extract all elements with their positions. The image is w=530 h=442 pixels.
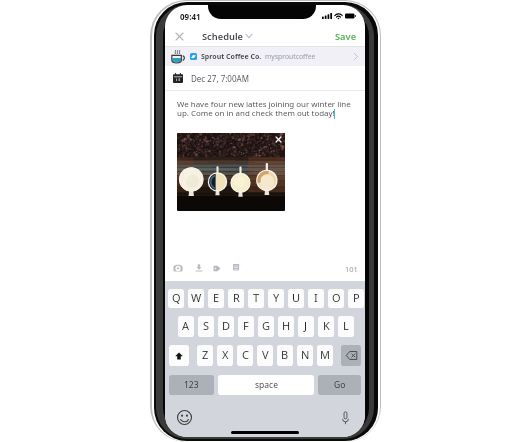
button[interactable]: X [217, 345, 233, 366]
button[interactable]: M [317, 345, 333, 366]
button[interactable]: Emoji [177, 410, 192, 425]
button[interactable]: Tag [211, 262, 223, 274]
staticText: C [242, 347, 249, 362]
button[interactable]: Dictate [337, 410, 353, 426]
staticText: A [182, 318, 190, 333]
button[interactable]: S [198, 316, 214, 337]
button[interactable]: E [208, 289, 224, 308]
staticText: O [332, 290, 341, 305]
staticText: K [323, 318, 330, 333]
staticText: Dec 27, 7:00AM [191, 73, 249, 84]
button[interactable]: Go [318, 375, 361, 395]
staticText: mysproutcoffee [265, 52, 316, 61]
staticText: I [314, 290, 318, 305]
button[interactable]: Save [335, 28, 357, 44]
staticText: E [213, 290, 220, 305]
staticText: S [203, 318, 210, 333]
staticText: V [262, 347, 269, 362]
staticText: 101 [345, 264, 358, 274]
button[interactable]: L [338, 316, 354, 337]
staticText: R [233, 290, 240, 305]
button[interactable]: D [218, 316, 234, 337]
staticText: Go [334, 379, 346, 391]
staticText: Sprout Coffee Co. [201, 52, 262, 62]
button[interactable]: Dec 27, 7:00AM [165, 66, 365, 90]
button[interactable]: R [228, 289, 244, 308]
button[interactable]: I [308, 289, 324, 308]
staticText: Y [273, 290, 280, 305]
button[interactable]: Y [268, 289, 284, 308]
button[interactable]: Z [197, 345, 213, 366]
button[interactable]: N [297, 345, 313, 366]
staticText: T [253, 290, 260, 305]
button[interactable]: K [318, 316, 334, 337]
staticText: Save [335, 30, 357, 43]
staticText: M [320, 347, 330, 362]
button[interactable]: B [277, 345, 293, 366]
staticText: H [282, 318, 291, 333]
button[interactable]: Backspace [341, 345, 361, 366]
staticText: W [191, 290, 202, 305]
staticText: Z [202, 347, 209, 362]
staticText: N [301, 347, 310, 362]
staticText: P [353, 290, 360, 305]
staticText: D [222, 318, 231, 333]
staticText: L [343, 318, 349, 333]
staticText: J [304, 318, 308, 333]
button[interactable]: 123 [169, 375, 214, 395]
button[interactable]: F [238, 316, 254, 337]
button[interactable]: Close [171, 28, 187, 44]
staticText: G [262, 318, 271, 333]
staticText: F [243, 318, 249, 333]
button[interactable]: U [288, 289, 304, 308]
button[interactable]: Q [168, 289, 184, 308]
button[interactable]: P [348, 289, 364, 308]
button[interactable]: G [258, 316, 274, 337]
button[interactable]: Sprout Coffee Co. [165, 47, 365, 66]
button[interactable]: Shift [169, 345, 189, 366]
button[interactable]: C [237, 345, 253, 366]
button[interactable]: O [328, 289, 344, 308]
button[interactable]: T [248, 289, 264, 308]
staticText: space [255, 379, 278, 391]
staticText: We have four new lattes joining our wint… [177, 99, 357, 119]
staticText: 123 [184, 379, 199, 391]
button[interactable]: Remove image [275, 136, 282, 143]
button[interactable]: J [298, 316, 314, 337]
staticText: X [222, 347, 229, 362]
button[interactable]: A [178, 316, 194, 337]
staticText: U [292, 290, 301, 305]
staticText: B [281, 347, 289, 362]
staticText: 09:41 [180, 11, 201, 22]
staticText: Schedule [202, 30, 243, 43]
button[interactable]: Upload [193, 262, 205, 274]
button[interactable]: space [218, 375, 314, 395]
staticText: Q [172, 290, 181, 305]
button[interactable]: V [257, 345, 273, 366]
button[interactable]: Add photo [172, 262, 184, 274]
button[interactable]: W [188, 289, 204, 308]
button[interactable]: Copy [231, 262, 243, 274]
button[interactable]: Schedule [202, 28, 252, 44]
button[interactable]: H [278, 316, 294, 337]
